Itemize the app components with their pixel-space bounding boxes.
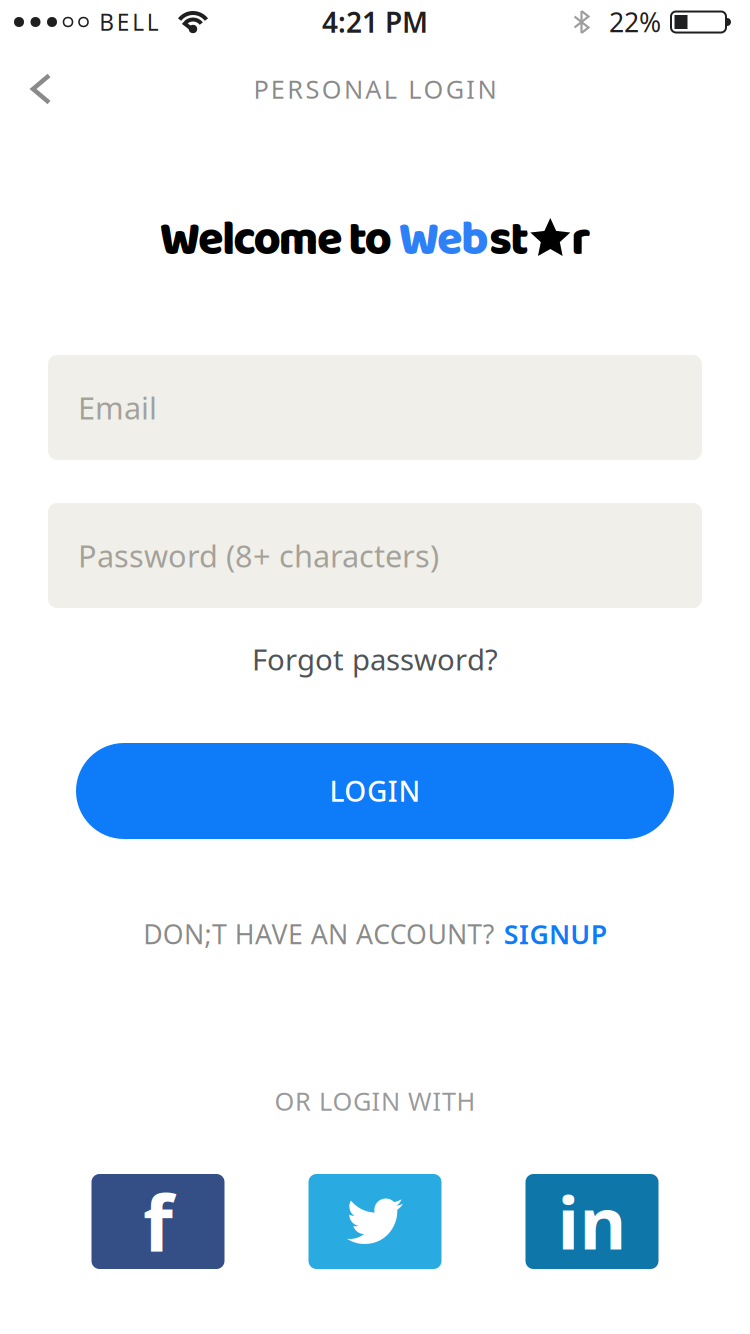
button[interactable]: Login with Facebook xyxy=(91,1174,224,1269)
button[interactable]: Login with Twitter xyxy=(308,1174,441,1269)
staticText: f xyxy=(143,1170,173,1273)
staticText: st xyxy=(489,203,529,278)
button[interactable]: Password xyxy=(48,503,702,608)
staticText: LOGIN xyxy=(329,772,421,810)
button[interactable]: Back xyxy=(0,67,52,110)
staticText: Email xyxy=(78,387,157,428)
staticText: 4:21 PM xyxy=(322,3,428,41)
staticText: PERSONAL LOGIN xyxy=(254,72,496,106)
staticText: r xyxy=(571,203,590,278)
button[interactable]: Email xyxy=(48,355,702,460)
staticText: Forgot password? xyxy=(252,639,498,678)
staticText: Welcome to xyxy=(160,203,399,278)
button[interactable]: SIGNUP xyxy=(504,916,607,952)
staticText: DON;T HAVE AN ACCOUNT? xyxy=(143,916,495,952)
button[interactable]: Forgot password? xyxy=(240,641,510,677)
button[interactable]: LOGIN xyxy=(76,743,674,839)
staticText: BELL xyxy=(99,7,159,37)
staticText: in xyxy=(557,1174,626,1269)
staticText: SIGNUP xyxy=(504,916,607,952)
staticText: Web xyxy=(399,203,489,278)
button[interactable]: Login with LinkedIn xyxy=(525,1174,658,1269)
staticText: Password (8+ characters) xyxy=(78,535,439,576)
staticText: OR LOGIN WITH xyxy=(274,1084,475,1118)
staticText: 22% xyxy=(609,4,661,40)
